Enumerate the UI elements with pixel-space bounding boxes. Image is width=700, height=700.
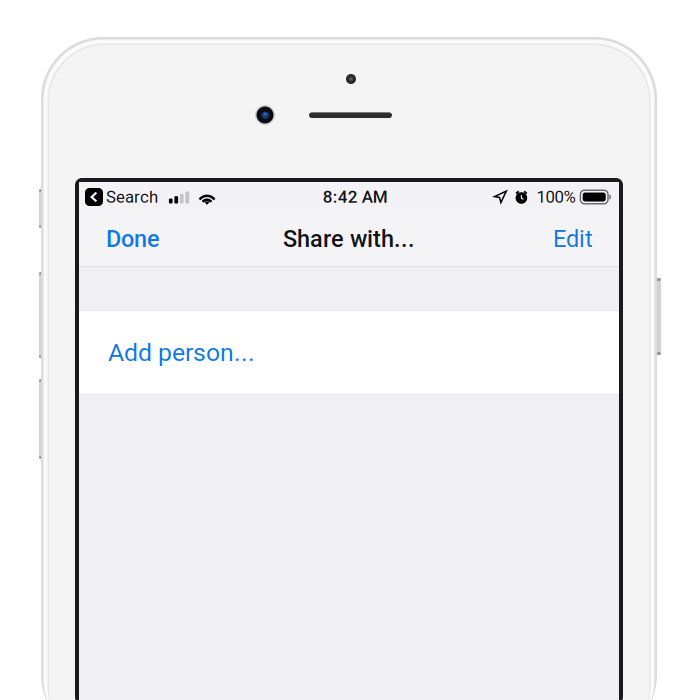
- staticText: Search: [106, 187, 158, 207]
- staticText: 100%: [536, 187, 575, 207]
- staticText: Share with...: [283, 225, 415, 253]
- button[interactable]: Add person...: [79, 311, 619, 394]
- button[interactable]: Edit: [549, 215, 597, 263]
- staticText: Add person...: [108, 338, 255, 367]
- button[interactable]: Done: [102, 215, 164, 263]
- staticText: Done: [106, 225, 160, 253]
- staticText: Edit: [553, 225, 593, 253]
- staticText: 8:42 AM: [323, 187, 388, 207]
